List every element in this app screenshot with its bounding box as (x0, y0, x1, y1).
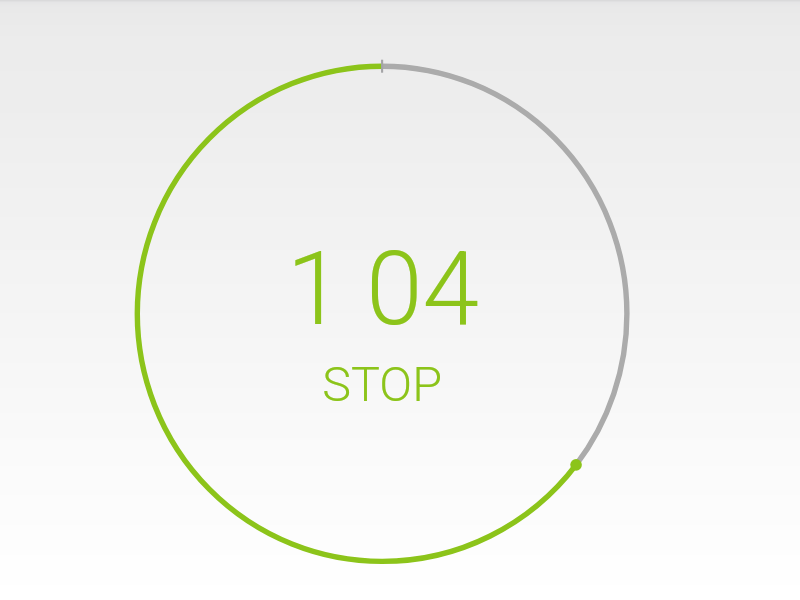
button[interactable]: Stop timer (0, 0, 800, 600)
